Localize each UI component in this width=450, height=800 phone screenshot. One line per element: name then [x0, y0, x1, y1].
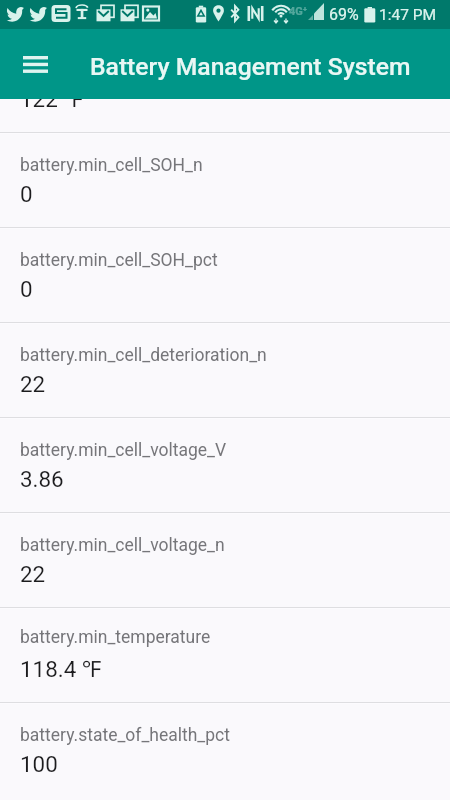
button[interactable]: battery.min_cell_SOH_n	[0, 132, 450, 227]
staticText: battery.state_of_health_pct	[20, 725, 230, 746]
button[interactable]: battery.max_temperature	[0, 37, 450, 132]
staticText: 122 ℉	[20, 83, 83, 114]
button[interactable]: Open navigation menu	[11, 40, 59, 88]
staticText: Battery Management System	[90, 52, 411, 81]
staticText: 118.4 ℉	[20, 653, 102, 684]
staticText: 69%	[329, 5, 359, 24]
button[interactable]: battery.min_cell_SOH_pct	[0, 227, 450, 322]
staticText: battery.min_cell_voltage_V	[20, 440, 227, 461]
button[interactable]: battery.min_cell_voltage_n	[0, 512, 450, 607]
staticText: 0	[20, 276, 33, 302]
staticText: 0	[20, 181, 33, 207]
staticText: 22	[20, 371, 46, 397]
staticText: 3.86	[20, 466, 64, 492]
button[interactable]: battery.min_cell_deterioration_n	[0, 322, 450, 417]
button[interactable]: battery.min_temperature	[0, 607, 450, 702]
staticText: battery.min_cell_SOH_pct	[20, 250, 218, 271]
staticText: 100	[20, 751, 58, 777]
staticText: battery.min_cell_SOH_n	[20, 155, 203, 176]
staticText: 4G⁺	[289, 5, 308, 18]
button[interactable]: battery.min_cell_voltage_V	[0, 417, 450, 512]
staticText: battery.max_temperature	[20, 57, 215, 78]
staticText: battery.min_cell_deterioration_n	[20, 345, 267, 366]
staticText: battery.min_cell_voltage_n	[20, 535, 225, 556]
button[interactable]: battery.state_of_health_pct	[0, 702, 450, 797]
staticText: battery.min_temperature	[20, 627, 211, 648]
staticText: 1:47 PM	[379, 6, 437, 24]
staticText: 22	[20, 561, 46, 587]
